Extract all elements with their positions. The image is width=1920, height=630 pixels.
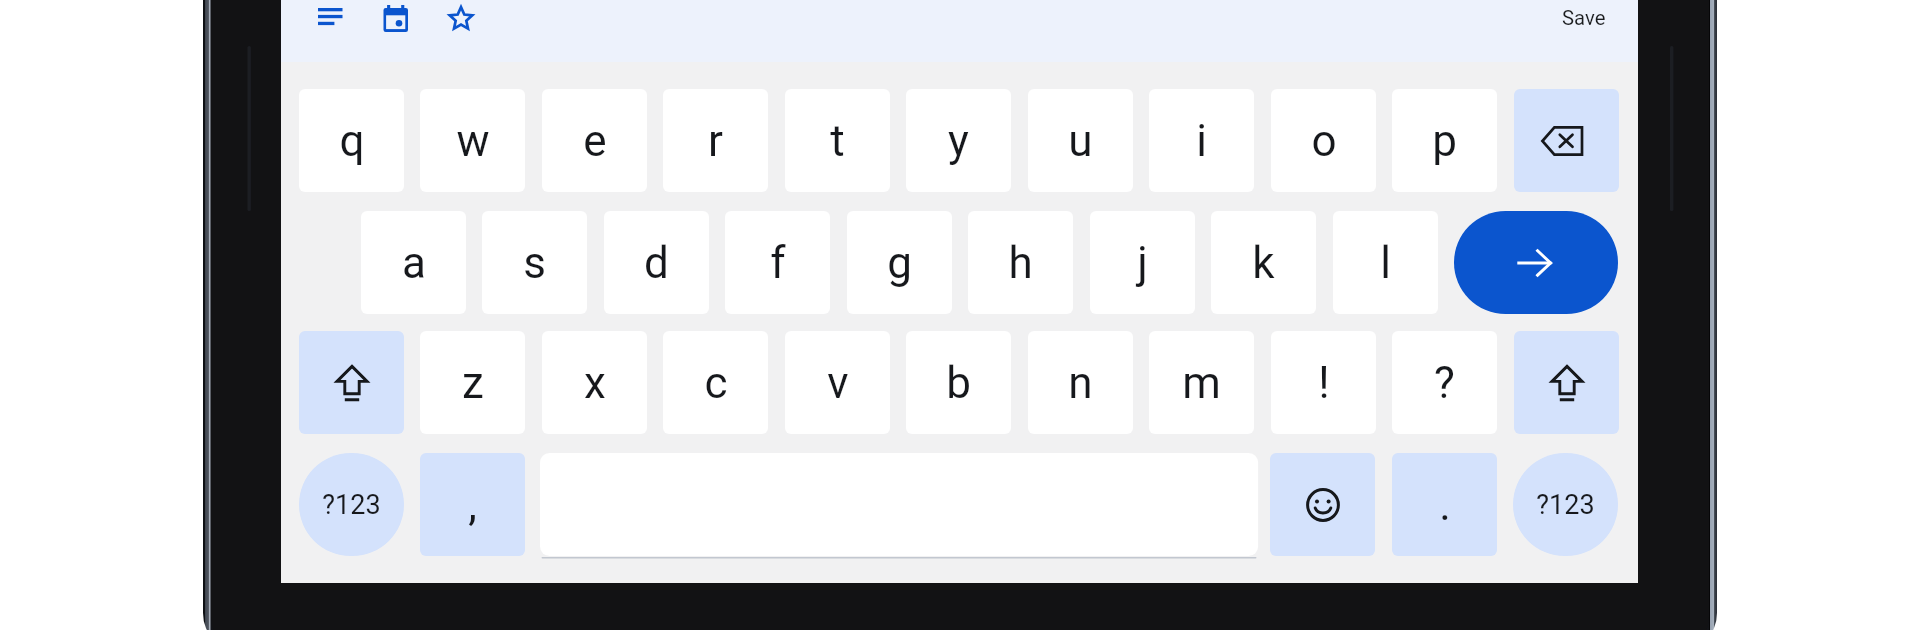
button[interactable]: ! [1271, 331, 1376, 434]
staticText: n [1068, 357, 1093, 409]
button[interactable]: Calendar [374, 0, 418, 41]
staticText: , [468, 479, 477, 531]
button[interactable]: r [663, 89, 768, 192]
button[interactable]: v [785, 331, 890, 434]
button[interactable]: Shift [1514, 331, 1619, 434]
staticText: k [1252, 237, 1275, 289]
button[interactable]: k [1211, 211, 1316, 314]
staticText: j [1137, 237, 1148, 289]
button[interactable]: ?123 [299, 453, 404, 556]
staticText: q [339, 115, 365, 167]
staticText: a [402, 237, 426, 289]
button[interactable]: b [906, 331, 1011, 434]
button[interactable]: w [420, 89, 525, 192]
staticText: u [1068, 115, 1093, 167]
button[interactable]: d [604, 211, 709, 314]
staticText: v [827, 357, 849, 409]
button[interactable]: Save [1545, 0, 1623, 36]
staticText: l [1380, 237, 1391, 289]
staticText: t [830, 115, 845, 167]
button[interactable]: c [663, 331, 768, 434]
staticText: c [704, 357, 728, 409]
button[interactable]: i [1149, 89, 1254, 192]
button[interactable]: p [1392, 89, 1497, 192]
staticText: r [708, 115, 723, 167]
button[interactable]: n [1028, 331, 1133, 434]
staticText: f [770, 237, 786, 289]
button[interactable]: ? [1392, 331, 1497, 434]
button[interactable]: Favourite [439, 0, 483, 41]
staticText: x [584, 357, 606, 409]
button[interactable]: t [785, 89, 890, 192]
staticText: ?123 [1536, 489, 1595, 521]
button[interactable]: z [420, 331, 525, 434]
button[interactable]: Enter [1454, 211, 1618, 314]
button[interactable]: q [299, 89, 404, 192]
button[interactable]: h [968, 211, 1073, 314]
staticText: d [644, 237, 669, 289]
button[interactable]: u [1028, 89, 1133, 192]
staticText: h [1008, 237, 1033, 289]
button[interactable]: ?123 [1513, 453, 1618, 556]
staticText: . [1439, 479, 1451, 531]
staticText: s [523, 237, 546, 289]
button[interactable]: Shift [299, 331, 404, 434]
button[interactable]: j [1090, 211, 1195, 314]
button[interactable]: s [482, 211, 587, 314]
staticText: w [456, 115, 490, 167]
button[interactable]: . [1392, 453, 1497, 556]
button[interactable]: y [906, 89, 1011, 192]
staticText: p [1432, 115, 1457, 167]
staticText: z [462, 357, 484, 409]
button[interactable]: Text formatting [308, 0, 352, 40]
staticText: ?123 [322, 489, 381, 521]
button[interactable]: Space [540, 453, 1258, 559]
staticText: ? [1434, 357, 1455, 409]
button[interactable]: g [847, 211, 952, 314]
button[interactable]: e [542, 89, 647, 192]
staticText: i [1196, 115, 1207, 167]
staticText: Save [1562, 6, 1606, 30]
button[interactable]: , [420, 453, 525, 556]
button[interactable]: o [1271, 89, 1376, 192]
button[interactable]: a [361, 211, 466, 314]
staticText: m [1182, 357, 1221, 409]
staticText: ! [1318, 357, 1330, 409]
button[interactable]: m [1149, 331, 1254, 434]
staticText: y [948, 115, 969, 167]
button[interactable]: f [725, 211, 830, 314]
button[interactable]: x [542, 331, 647, 434]
button[interactable]: Emoji [1270, 453, 1375, 556]
button[interactable]: l [1333, 211, 1438, 314]
staticText: o [1311, 115, 1337, 167]
button[interactable]: Backspace [1514, 89, 1619, 192]
staticText: b [946, 357, 971, 409]
staticText: e [583, 115, 607, 167]
staticText: g [887, 237, 912, 289]
